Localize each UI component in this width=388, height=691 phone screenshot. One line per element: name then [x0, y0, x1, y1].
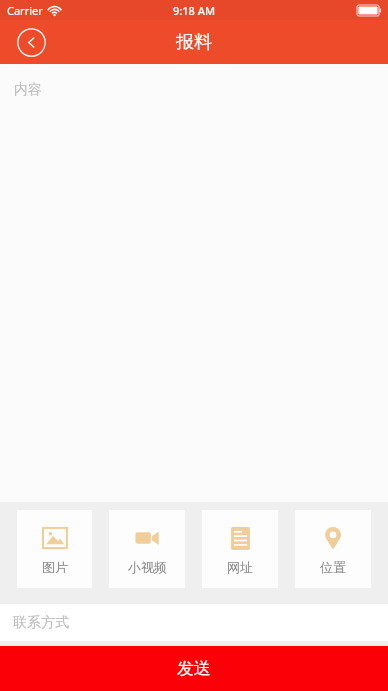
button[interactable]: 发送: [0, 646, 388, 691]
staticText: 联系方式: [13, 614, 69, 632]
button[interactable]: 联系方式: [0, 604, 388, 641]
button[interactable]: 位置: [295, 510, 371, 588]
staticText: 报料: [176, 31, 212, 54]
staticText: 发送: [177, 658, 211, 679]
button[interactable]: 网址: [202, 510, 278, 588]
staticText: 网址: [227, 559, 253, 575]
button[interactable]: 小视频: [109, 510, 185, 588]
staticText: 图片: [42, 559, 68, 575]
staticText: 小视频: [128, 559, 167, 575]
staticText: Carrier: [7, 3, 43, 18]
staticText: 9:18 AM: [173, 3, 216, 18]
button[interactable]: Back: [17, 28, 46, 57]
staticText: 位置: [320, 559, 346, 575]
staticText: 内容: [14, 81, 42, 99]
button[interactable]: 图片: [17, 510, 92, 588]
